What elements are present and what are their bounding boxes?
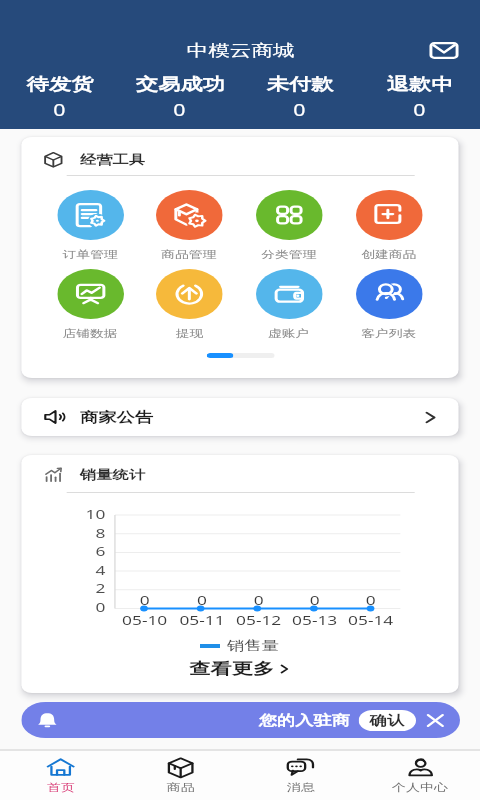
staticText: 0 [343, 591, 399, 609]
staticText: 05-11 [173, 611, 231, 629]
staticText: 待发货 [27, 74, 95, 95]
staticText: 2 [21, 579, 105, 597]
staticText: 0 [413, 99, 427, 121]
button[interactable]: 商品管理 [140, 190, 239, 261]
button[interactable]: 商家公告 [21, 398, 459, 436]
staticText: 个人中心 [392, 781, 448, 794]
button[interactable]: 退款中 [360, 74, 480, 121]
staticText: 商家公告 [80, 409, 153, 426]
staticText: 4 [21, 561, 105, 579]
staticText: 10 [21, 505, 105, 523]
button[interactable]: 店铺数据 [41, 269, 140, 340]
button[interactable]: Close [424, 712, 447, 729]
button[interactable]: 客户列表 [339, 269, 439, 340]
button[interactable]: 首页 [0, 756, 120, 794]
staticText: 销售量 [227, 637, 280, 654]
button[interactable]: 交易成功 [120, 74, 240, 121]
button[interactable]: Messages [424, 35, 464, 65]
staticText: 订单管理 [63, 248, 119, 261]
staticText: 05-13 [287, 611, 343, 629]
button[interactable]: 创建商品 [339, 190, 439, 261]
button[interactable]: 您的入驻商 [21, 702, 460, 738]
staticText: 经营工具 [80, 152, 145, 167]
button[interactable]: 个人中心 [360, 756, 480, 794]
button[interactable]: 消息 [240, 756, 360, 794]
staticText: 店铺数据 [63, 327, 119, 340]
staticText: 8 [21, 524, 105, 542]
staticText: 创建商品 [361, 248, 417, 261]
staticText: 0 [173, 99, 187, 121]
staticText: 您的入驻商 [259, 712, 351, 729]
staticText: 0 [287, 591, 343, 609]
staticText: 中模云商城 [187, 40, 295, 60]
button[interactable]: 查看更多 [21, 659, 459, 679]
button[interactable]: 分类管理 [239, 190, 339, 261]
staticText: 分类管理 [261, 248, 317, 261]
button[interactable]: 订单管理 [41, 190, 140, 261]
staticText: 0 [173, 591, 231, 609]
staticText: 首页 [47, 781, 75, 794]
staticText: 商品管理 [161, 248, 217, 261]
staticText: 0 [231, 591, 287, 609]
staticText: 05-10 [116, 611, 173, 629]
button[interactable]: 虚账户 [239, 269, 339, 340]
staticText: 退款中 [387, 74, 455, 95]
staticText: 0 [293, 99, 307, 121]
staticText: 交易成功 [136, 74, 225, 95]
button[interactable]: 商品 [120, 756, 240, 794]
staticText: 05-12 [231, 611, 287, 629]
staticText: 虚账户 [268, 327, 309, 340]
staticText: 未付款 [267, 74, 335, 95]
button[interactable]: 未付款 [240, 74, 360, 121]
staticText: 查看更多 [189, 659, 275, 679]
staticText: 销量统计 [80, 467, 145, 482]
staticText: 消息 [287, 781, 315, 794]
staticText: 商品 [167, 781, 195, 794]
staticText: 确认 [369, 712, 405, 729]
staticText: 0 [53, 99, 67, 121]
staticText: 0 [21, 598, 105, 616]
staticText: 6 [21, 542, 105, 560]
staticText: 0 [116, 591, 173, 609]
button[interactable]: 提现 [140, 269, 239, 340]
button[interactable]: 确认 [359, 710, 416, 731]
button[interactable]: 待发货 [0, 74, 120, 121]
staticText: 05-14 [343, 611, 399, 629]
staticText: 提现 [176, 327, 204, 340]
staticText: 客户列表 [361, 327, 417, 340]
